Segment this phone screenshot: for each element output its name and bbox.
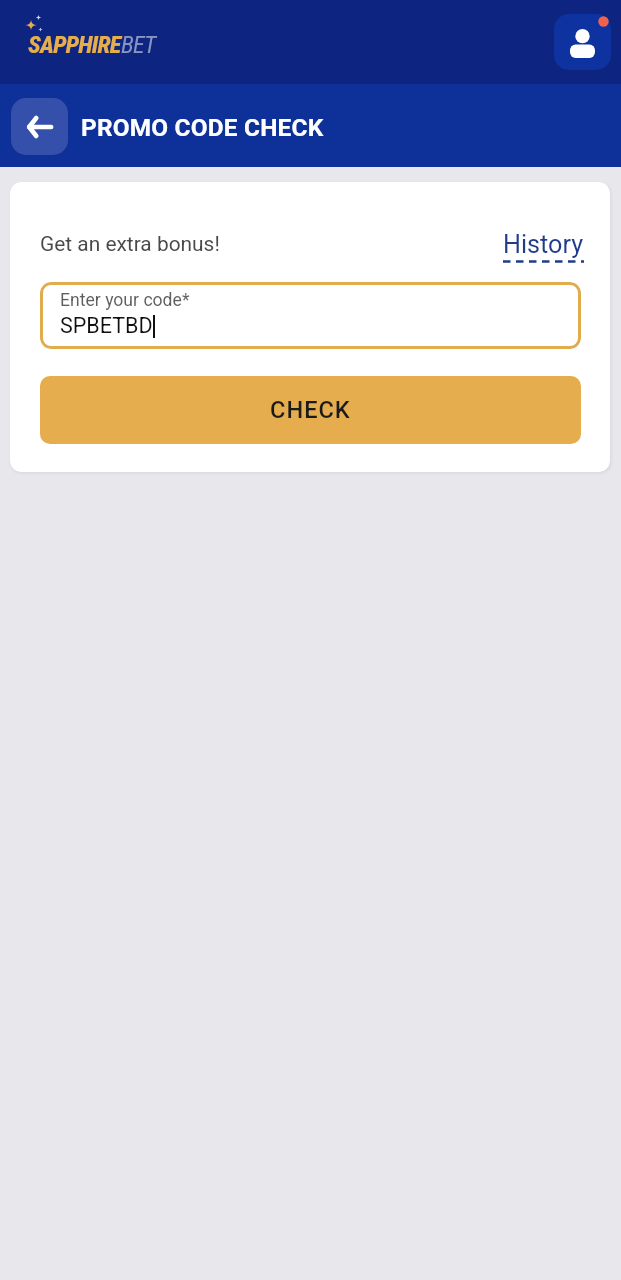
button[interactable]: Back xyxy=(11,98,68,155)
staticText: SAPPHIRE xyxy=(28,31,121,59)
staticText: History xyxy=(503,230,584,260)
staticText: Enter your code* xyxy=(60,290,190,311)
staticText: CHECK xyxy=(270,396,351,424)
button[interactable]: SapphireBet xyxy=(0,0,200,84)
staticText: Get an extra bonus! xyxy=(40,232,220,256)
staticText: BET xyxy=(121,31,156,59)
staticText: PROMO CODE CHECK xyxy=(81,113,324,142)
button[interactable]: CHECK xyxy=(40,376,581,444)
button[interactable]: History xyxy=(503,230,584,264)
staticText: SPBETBD xyxy=(60,313,153,338)
button[interactable]: Enter your code* xyxy=(40,282,581,349)
button[interactable]: Account xyxy=(554,14,611,70)
